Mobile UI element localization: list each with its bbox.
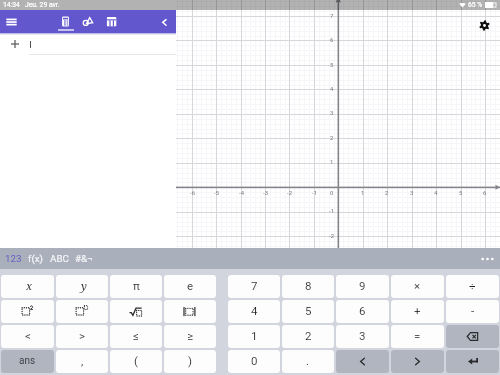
staticText: 9 <box>359 279 366 292</box>
staticText: ABC <box>50 253 69 264</box>
staticText: 3 <box>410 190 414 197</box>
staticText: -2 <box>329 233 334 240</box>
button[interactable]: ans <box>1 350 54 373</box>
button[interactable]: del <box>446 325 499 348</box>
button[interactable]: 4 <box>228 300 280 323</box>
button[interactable]: ≥ <box>164 325 216 348</box>
staticText: -5 <box>214 190 219 197</box>
staticText: -1 <box>312 190 317 197</box>
button[interactable]: 6 <box>336 300 389 323</box>
button[interactable]: e <box>164 275 216 298</box>
button[interactable]: Geometry <box>77 10 100 33</box>
staticText: 0 <box>330 190 334 197</box>
staticText: e <box>187 279 194 292</box>
staticText: 4 <box>330 86 334 93</box>
staticText: ) <box>188 354 193 367</box>
staticText: 6 <box>483 190 487 197</box>
staticText: 123 <box>5 253 22 264</box>
button[interactable]: - <box>446 300 499 323</box>
staticText: 6 <box>359 304 366 317</box>
staticText: 7 <box>251 279 258 292</box>
staticText: × <box>414 279 421 292</box>
staticText: -4 <box>239 190 244 197</box>
button[interactable]: x <box>1 275 54 298</box>
button[interactable]: Graphics settings <box>479 20 490 31</box>
staticText: ≤ <box>133 329 139 342</box>
button[interactable]: sq <box>1 300 54 323</box>
button[interactable]: 8 <box>282 275 334 298</box>
button[interactable]: prev <box>336 350 389 373</box>
staticText: 2 <box>330 135 334 142</box>
button[interactable]: 0 <box>228 350 280 373</box>
staticText: ( <box>134 354 138 367</box>
staticText: - <box>471 304 475 317</box>
button[interactable]: = <box>391 325 444 348</box>
staticText: y <box>81 278 87 293</box>
staticText: -1 <box>329 208 334 215</box>
button[interactable]: Collapse panel <box>159 16 170 27</box>
staticText: x <box>26 278 33 293</box>
button[interactable]: + <box>391 300 444 323</box>
button[interactable]: 5 <box>282 300 334 323</box>
staticText: > <box>79 329 86 342</box>
staticText: 5 <box>330 62 334 69</box>
staticText: 14:34 Jeu. 29 avr. <box>3 1 60 9</box>
button[interactable]: < <box>1 325 54 348</box>
button[interactable]: × <box>391 275 444 298</box>
staticText: + <box>414 304 421 317</box>
button[interactable]: ABC <box>50 250 69 267</box>
staticText: 7 <box>330 13 334 20</box>
staticText: 5 <box>459 190 463 197</box>
button[interactable]: 1 <box>228 325 280 348</box>
button[interactable]: 7 <box>228 275 280 298</box>
button[interactable]: More options <box>481 253 494 265</box>
staticText: , <box>81 354 84 367</box>
staticText: 2 <box>305 329 312 342</box>
button[interactable]: f(x) <box>28 250 44 267</box>
staticText: 4 <box>251 304 258 317</box>
button[interactable]: ( <box>110 350 162 373</box>
staticText: π <box>133 279 140 292</box>
button[interactable]: y <box>56 275 108 298</box>
staticText: 1 <box>330 159 334 166</box>
button[interactable]: 123 <box>5 250 22 267</box>
staticText: . <box>306 354 310 367</box>
staticText: 65 % <box>468 1 483 9</box>
staticText: 3 <box>359 329 366 342</box>
button[interactable]: 2 <box>282 325 334 348</box>
staticText: 0 <box>251 354 258 367</box>
staticText: 5 <box>305 304 312 317</box>
staticText: 4 <box>434 190 438 197</box>
staticText: ans <box>19 355 36 367</box>
button[interactable]: #&¬ <box>75 250 93 267</box>
staticText: ≥ <box>187 329 194 342</box>
button[interactable]: sqrt <box>110 300 162 323</box>
button[interactable]: 3 <box>336 325 389 348</box>
button[interactable]: > <box>56 325 108 348</box>
button[interactable]: enter <box>446 350 499 373</box>
button[interactable]: next <box>391 350 444 373</box>
button[interactable]: π <box>110 275 162 298</box>
button[interactable]: ≤ <box>110 325 162 348</box>
button[interactable]: ) <box>164 350 216 373</box>
staticText: 3 <box>330 110 334 117</box>
staticText: -6 <box>190 190 195 197</box>
staticText: f(x) <box>28 253 44 264</box>
button[interactable]: ÷ <box>446 275 499 298</box>
button[interactable]: 9 <box>336 275 389 298</box>
staticText: -3 <box>263 190 268 197</box>
button[interactable]: Graphing calculator <box>54 10 77 33</box>
staticText: 8 <box>305 279 312 292</box>
button[interactable]: pow <box>56 300 108 323</box>
staticText: #&¬ <box>75 253 93 264</box>
staticText: 2 <box>385 190 389 197</box>
staticText: ÷ <box>469 279 476 292</box>
button[interactable]: abs <box>164 300 216 323</box>
button[interactable]: , <box>56 350 108 373</box>
button[interactable]: Table <box>100 10 123 33</box>
staticText: < <box>25 329 31 342</box>
staticText: 1 <box>361 190 365 197</box>
staticText: = <box>414 329 421 342</box>
button[interactable]: Open menu <box>5 15 18 28</box>
button[interactable]: . <box>282 350 334 373</box>
